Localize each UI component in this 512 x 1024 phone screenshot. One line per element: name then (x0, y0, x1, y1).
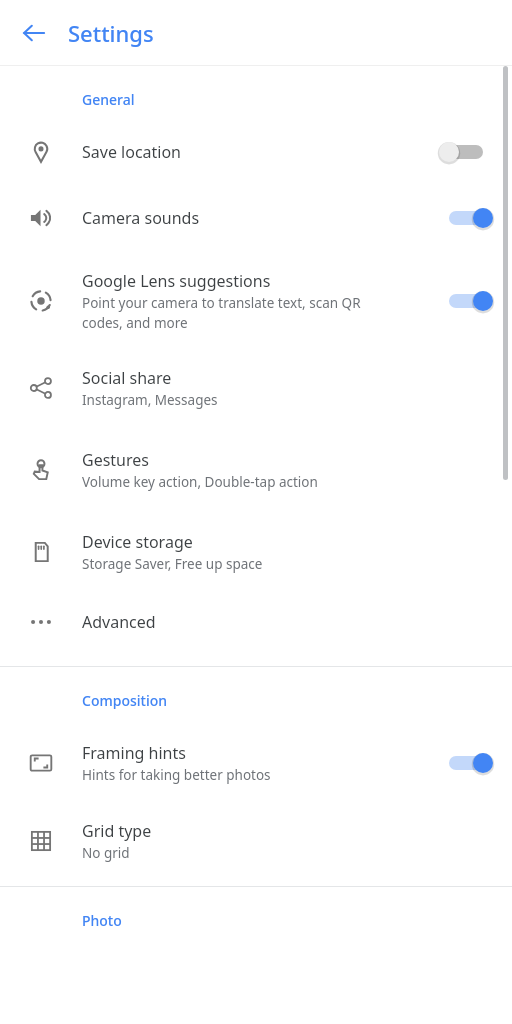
staticText: Point your camera to translate text, sca… (82, 294, 361, 332)
button[interactable]: Social share (0, 347, 512, 429)
staticText: Settings (68, 18, 154, 48)
staticText: Volume key action, Double-tap action (82, 473, 318, 491)
staticText: Composition (82, 691, 167, 710)
button[interactable]: Toggle off (444, 138, 488, 166)
button[interactable]: Google Lens suggestions (0, 255, 512, 347)
button[interactable]: Toggle on (444, 287, 488, 315)
staticText: Framing hints (82, 742, 186, 764)
staticText: Advanced (82, 611, 156, 633)
staticText: Social share (82, 367, 172, 389)
button[interactable]: Back (10, 9, 58, 57)
button[interactable]: Device storage (0, 511, 512, 593)
staticText: Gestures (82, 449, 149, 471)
staticText: Storage Saver, Free up space (82, 555, 263, 573)
staticText: Hints for taking better photos (82, 766, 271, 784)
button[interactable]: Save location (0, 123, 512, 181)
button[interactable]: Toggle on (444, 749, 488, 777)
button[interactable]: Grid type (0, 802, 512, 880)
button[interactable]: Camera sounds (0, 181, 512, 255)
staticText: Device storage (82, 531, 193, 553)
staticText: Instagram, Messages (82, 391, 218, 409)
button[interactable]: Framing hints (0, 724, 512, 802)
staticText: Camera sounds (82, 207, 200, 229)
staticText: General (82, 90, 135, 109)
staticText: Google Lens suggestions (82, 270, 271, 292)
button[interactable]: Toggle on (444, 204, 488, 232)
staticText: Photo (82, 911, 122, 930)
staticText: Save location (82, 141, 182, 163)
staticText: Grid type (82, 820, 152, 842)
button[interactable]: Advanced (0, 593, 512, 651)
staticText: No grid (82, 844, 130, 862)
button[interactable]: Gestures (0, 429, 512, 511)
